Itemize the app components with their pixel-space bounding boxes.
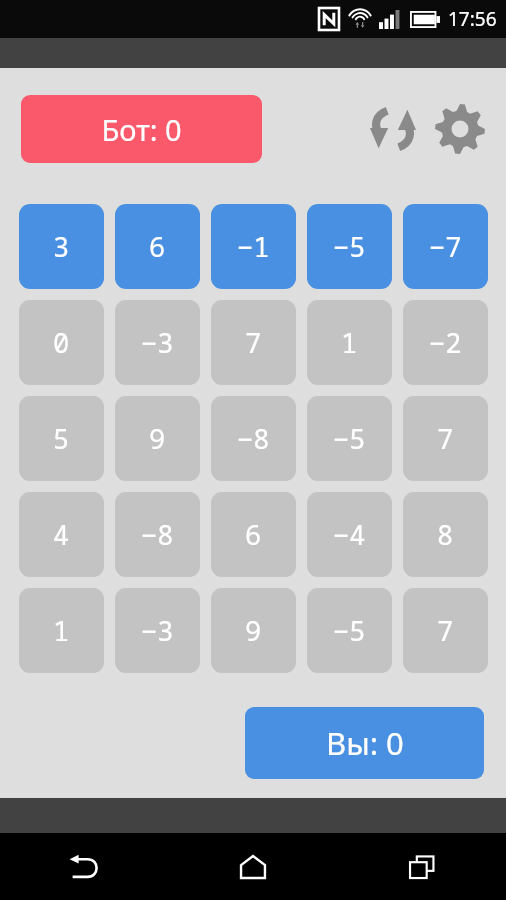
button[interactable]: 5 <box>19 396 104 481</box>
button[interactable]: Settings <box>431 100 489 158</box>
button[interactable]: −1 <box>211 204 296 289</box>
button[interactable]: 7 <box>403 396 488 481</box>
staticText: 5 <box>53 420 70 457</box>
staticText: 6 <box>245 516 262 553</box>
button[interactable]: −5 <box>307 396 392 481</box>
staticText: 4 <box>53 516 70 553</box>
button[interactable]: −3 <box>115 588 200 673</box>
staticText: 1 <box>341 324 358 361</box>
button[interactable]: Home <box>168 833 337 900</box>
button[interactable]: −8 <box>211 396 296 481</box>
staticText: 0 <box>53 324 70 361</box>
staticText: −4 <box>333 516 366 553</box>
staticText: −7 <box>429 228 462 265</box>
button[interactable]: −4 <box>307 492 392 577</box>
button[interactable]: 1 <box>307 300 392 385</box>
staticText: −2 <box>429 324 462 361</box>
button[interactable]: Swap <box>365 101 421 157</box>
staticText: 8 <box>437 516 454 553</box>
staticText: 7 <box>437 612 454 649</box>
staticText: 17:56 <box>448 6 497 32</box>
button[interactable]: 9 <box>211 588 296 673</box>
staticText: 7 <box>245 324 262 361</box>
staticText: 6 <box>149 228 166 265</box>
button[interactable]: 7 <box>403 588 488 673</box>
staticText: −3 <box>141 612 174 649</box>
button[interactable]: 1 <box>19 588 104 673</box>
staticText: 9 <box>149 420 166 457</box>
button[interactable]: −7 <box>403 204 488 289</box>
button[interactable]: −3 <box>115 300 200 385</box>
button[interactable]: Recents <box>337 833 506 900</box>
staticText: 7 <box>437 420 454 457</box>
button[interactable]: 8 <box>403 492 488 577</box>
button[interactable]: Бот: 0 <box>21 95 262 163</box>
staticText: −8 <box>141 516 174 553</box>
button[interactable]: 9 <box>115 396 200 481</box>
staticText: 1 <box>53 612 70 649</box>
button[interactable]: 6 <box>211 492 296 577</box>
staticText: −5 <box>333 612 366 649</box>
staticText: −3 <box>141 324 174 361</box>
staticText: −1 <box>237 228 270 265</box>
staticText: −8 <box>237 420 270 457</box>
button[interactable]: −2 <box>403 300 488 385</box>
button[interactable]: −5 <box>307 588 392 673</box>
staticText: Бот: 0 <box>101 110 182 149</box>
button[interactable]: Вы: 0 <box>245 707 484 779</box>
button[interactable]: 6 <box>115 204 200 289</box>
staticText: 3 <box>53 228 70 265</box>
staticText: −5 <box>333 420 366 457</box>
button[interactable]: 4 <box>19 492 104 577</box>
button[interactable]: −5 <box>307 204 392 289</box>
button[interactable]: Back <box>0 833 168 900</box>
staticText: 9 <box>245 612 262 649</box>
button[interactable]: 7 <box>211 300 296 385</box>
button[interactable]: −8 <box>115 492 200 577</box>
button[interactable]: 3 <box>19 204 104 289</box>
staticText: −5 <box>333 228 366 265</box>
staticText: Вы: 0 <box>326 722 404 764</box>
button[interactable]: 0 <box>19 300 104 385</box>
